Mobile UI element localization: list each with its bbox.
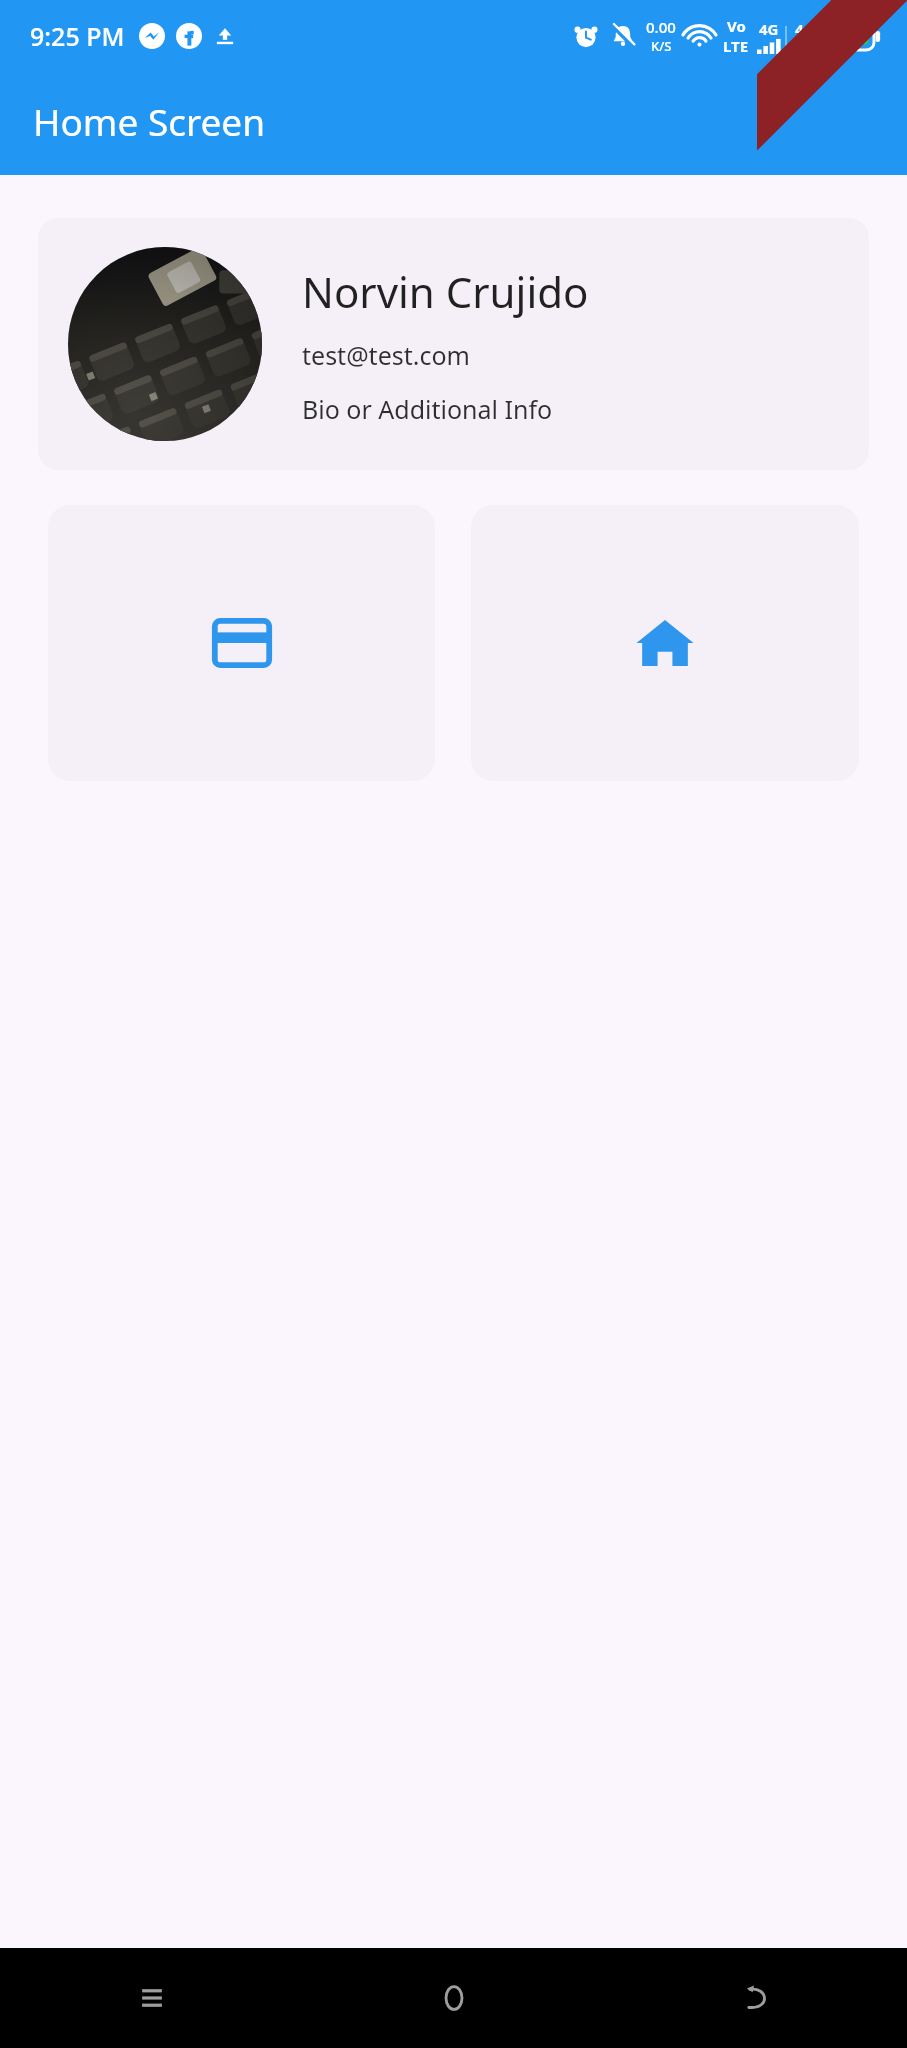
button[interactable]: Payments	[48, 505, 435, 781]
button[interactable]: Recent apps	[0, 1948, 303, 2048]
staticText: LTE	[723, 36, 749, 56]
staticText: Vo	[727, 16, 746, 36]
staticText: 9:25 PM	[30, 19, 125, 53]
staticText: 4G	[759, 19, 779, 39]
staticText: test@test.com	[302, 338, 470, 372]
staticText: 4G	[795, 19, 815, 39]
button[interactable]: Home	[303, 1948, 605, 2048]
button[interactable]: Norvin Crujido	[38, 218, 869, 470]
button[interactable]: Home	[471, 505, 859, 781]
staticText: Home Screen	[33, 96, 266, 146]
staticText: K/S	[651, 37, 672, 55]
staticText: Norvin Crujido	[302, 263, 589, 320]
staticText: Bio or Additional Info	[302, 392, 553, 426]
button[interactable]: Back	[605, 1948, 907, 2048]
staticText: 0.00	[646, 17, 676, 37]
